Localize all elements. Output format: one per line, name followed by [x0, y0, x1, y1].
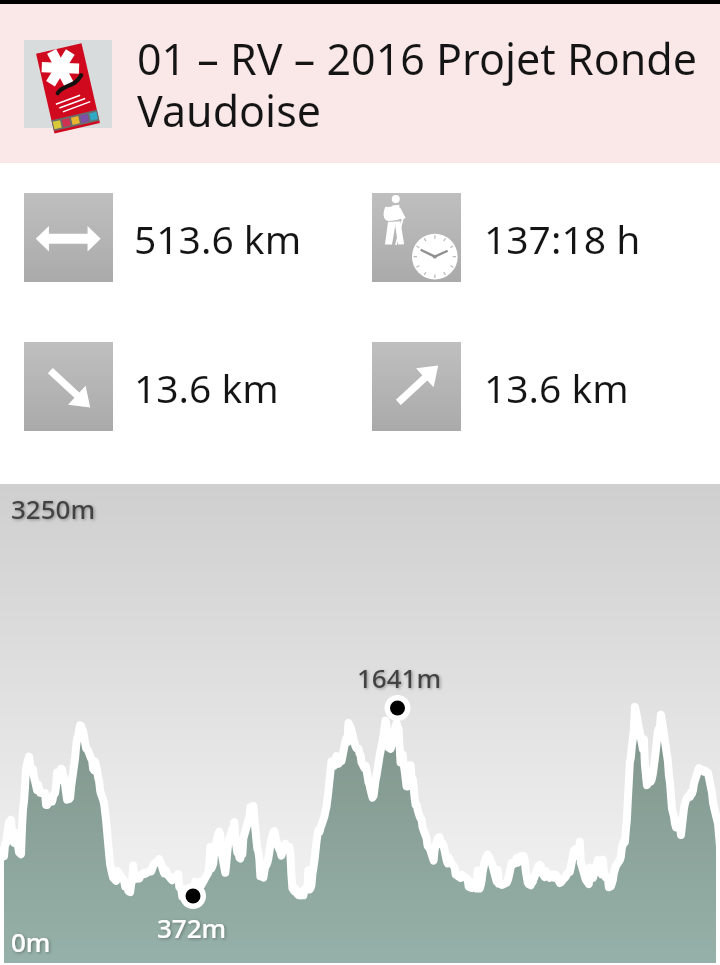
staticText: 372m [157, 910, 227, 945]
staticText: 513.6 km [134, 212, 302, 265]
staticText: 13.6 km [134, 361, 279, 414]
other: Total walking time [372, 193, 461, 282]
button[interactable]: Total distance [24, 192, 356, 281]
other: Total descent [24, 342, 113, 431]
button[interactable]: 01 – RV – 2016 Projet Ronde Vaudoise [0, 4, 720, 163]
button[interactable]: Total ascent [372, 341, 720, 430]
other: Total distance [24, 193, 113, 282]
staticText: 13.6 km [484, 361, 629, 414]
staticText: 1641m [357, 660, 442, 695]
staticText: 3250m [11, 491, 96, 526]
button[interactable]: Total walking time [372, 192, 720, 281]
button[interactable]: Total descent [24, 341, 356, 430]
other: Total ascent [372, 342, 461, 431]
staticText: 01 – RV – 2016 Projet Ronde Vaudoise [137, 29, 714, 139]
staticText: 0m [11, 924, 51, 959]
staticText: 137:18 h [484, 212, 641, 265]
